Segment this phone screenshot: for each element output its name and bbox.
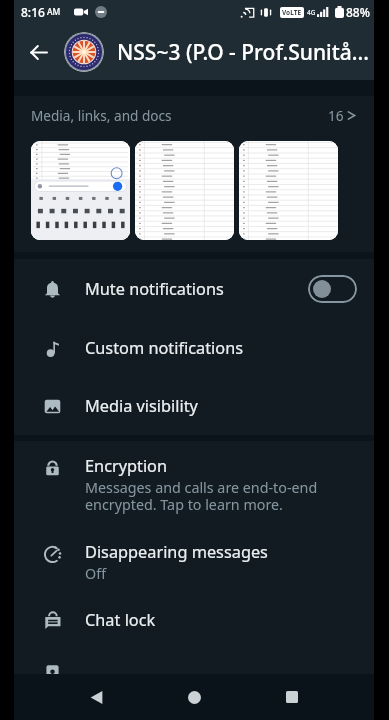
staticText: Custom notifications <box>85 337 244 359</box>
button[interactable]: Chat lock <box>14 591 374 648</box>
button[interactable]: Recent apps <box>272 677 312 717</box>
button[interactable]: Media visibility <box>14 377 374 435</box>
button[interactable]: Disappearing messages <box>14 527 374 591</box>
button[interactable]: Back <box>22 36 54 68</box>
button[interactable]: Mute notifications <box>14 259 374 318</box>
staticText: 8:16 <box>21 4 45 20</box>
button[interactable]: Home <box>174 677 214 717</box>
staticText: Mute notifications <box>85 278 224 300</box>
staticText: 16 <box>328 106 344 125</box>
button[interactable]: Media item <box>31 141 130 240</box>
staticText: 88% <box>346 4 370 20</box>
staticText: Media, links, and docs <box>31 106 172 125</box>
staticText: Messages and calls are end-to-end encryp… <box>85 478 318 514</box>
button[interactable]: Back <box>76 677 116 717</box>
staticText: VoLTE <box>282 8 302 17</box>
staticText: Media visibility <box>85 395 198 417</box>
button[interactable]: Advanced chat privacy <box>14 648 374 674</box>
staticText: Off <box>85 564 107 583</box>
staticText: AM <box>47 6 61 18</box>
staticText: 4G <box>307 8 316 17</box>
staticText: NSS~3 (P.O - Prof.Sunitå... <box>117 38 369 67</box>
staticText: Disappearing messages <box>85 541 268 563</box>
staticText: Encryption <box>85 455 168 477</box>
button[interactable]: Media item <box>239 141 338 240</box>
button[interactable]: Mute notifications toggle <box>308 275 357 303</box>
button[interactable]: Encryption <box>14 441 374 527</box>
staticText: Chat lock <box>85 609 156 631</box>
button[interactable]: Media item <box>135 141 234 240</box>
button[interactable]: Custom notifications <box>14 318 374 377</box>
button[interactable]: Media, links, and docs <box>14 96 374 252</box>
